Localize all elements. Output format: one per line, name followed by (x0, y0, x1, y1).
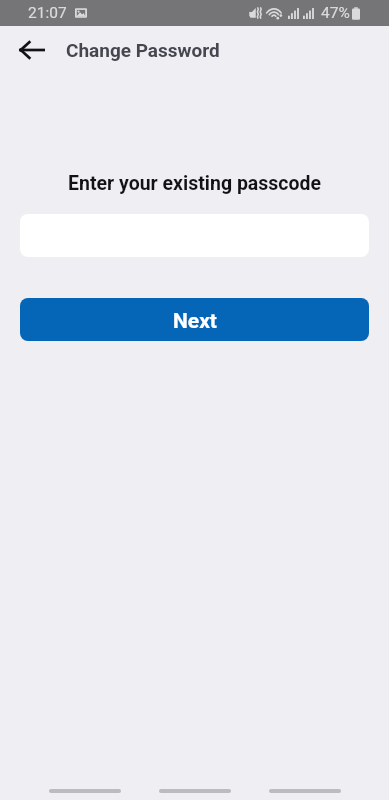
staticText: Next (173, 309, 217, 334)
staticText: 47% (321, 4, 350, 22)
button[interactable]: Back (269, 789, 341, 793)
button[interactable]: Back (9, 27, 55, 73)
button[interactable]: Next (20, 298, 369, 341)
button[interactable]: Home (159, 789, 231, 793)
button[interactable]: Recents (49, 789, 121, 793)
staticText: Enter your existing passcode (0, 172, 389, 195)
staticText: 21:07 (28, 4, 67, 22)
staticText: Change Password (66, 39, 220, 61)
